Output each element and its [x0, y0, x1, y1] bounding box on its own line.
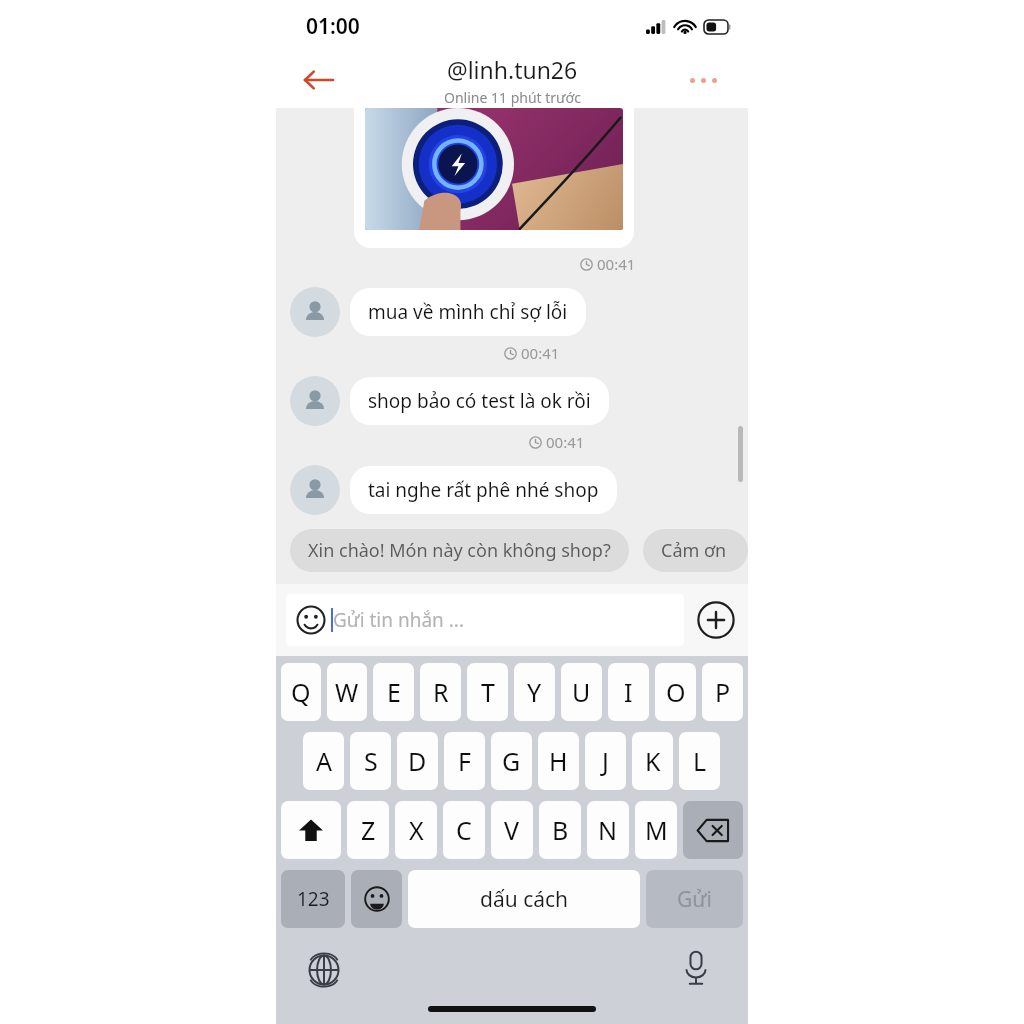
button[interactable]: Gửi	[646, 870, 743, 928]
button[interactable]: W	[327, 663, 367, 721]
staticText: C	[456, 813, 472, 847]
staticText: D	[408, 744, 427, 778]
button[interactable]: Backspace	[683, 801, 743, 859]
button[interactable]: C	[443, 801, 485, 859]
staticText: 00:41	[597, 254, 636, 274]
button[interactable]: F	[444, 732, 485, 790]
button[interactable]: 123	[281, 870, 345, 928]
staticText: U	[572, 675, 591, 709]
button[interactable]: X	[395, 801, 437, 859]
staticText: S	[364, 744, 378, 778]
staticText: F	[458, 744, 471, 778]
staticText: tai nghe rất phê nhé shop	[368, 477, 599, 503]
button[interactable]: U	[561, 663, 602, 721]
button[interactable]: dấu cách	[408, 870, 640, 928]
button[interactable]: O	[655, 663, 696, 721]
button[interactable]: I	[608, 663, 649, 721]
staticText: M	[645, 813, 668, 847]
staticText: X	[409, 813, 424, 847]
button[interactable]: J	[585, 732, 626, 790]
staticText: 00:41	[521, 343, 560, 363]
staticText: L	[693, 744, 707, 778]
button[interactable]: G	[491, 732, 532, 790]
staticText: 123	[297, 886, 330, 912]
button[interactable]: Y	[514, 663, 555, 721]
staticText: W	[335, 675, 359, 709]
staticText: H	[549, 744, 568, 778]
button[interactable]: N	[587, 801, 629, 859]
button[interactable]: Q	[281, 663, 321, 721]
button[interactable]: Cảm ơn bạn nhé	[643, 529, 748, 572]
staticText: shop bảo có test là ok rồi	[368, 388, 591, 414]
staticText: T	[481, 675, 495, 709]
staticText: Q	[291, 675, 311, 709]
staticText: E	[387, 675, 401, 709]
staticText: P	[715, 675, 731, 709]
staticText: Cảm ơn bạn nhé	[661, 538, 730, 563]
button[interactable]: tai nghe rất phê nhé shop	[350, 466, 617, 514]
staticText: J	[602, 744, 609, 778]
staticText: dấu cách	[480, 885, 569, 914]
button[interactable]: R	[420, 663, 461, 721]
button[interactable]: H	[538, 732, 579, 790]
button[interactable]: L	[679, 732, 720, 790]
button[interactable]: M	[635, 801, 677, 859]
staticText: R	[433, 675, 449, 709]
button[interactable]: Xin chào! Món này còn không shop?	[290, 529, 629, 572]
button[interactable]: Emoji	[351, 870, 402, 928]
button[interactable]: Change keyboard language	[300, 946, 348, 994]
button[interactable]: Add attachment	[694, 598, 738, 642]
button[interactable]: mua về mình chỉ sợ lỗi	[350, 288, 586, 336]
button[interactable]: Voice input	[672, 944, 720, 992]
staticText: Z	[361, 813, 376, 847]
staticText: N	[598, 813, 618, 847]
button[interactable]: T	[467, 663, 508, 721]
button[interactable]: E	[373, 663, 414, 721]
button[interactable]: S	[350, 732, 391, 790]
button[interactable]: shop bảo có test là ok rồi	[350, 377, 609, 425]
staticText: Y	[527, 675, 542, 709]
button[interactable]: Back	[296, 58, 340, 102]
button[interactable]: Gửi tin nhắn ...	[286, 594, 684, 646]
staticText: V	[504, 813, 520, 847]
staticText: A	[316, 744, 332, 778]
staticText: B	[552, 813, 569, 847]
staticText: Gửi	[677, 885, 712, 914]
staticText: 01:00	[306, 12, 360, 41]
staticText: 00:41	[546, 432, 585, 452]
button[interactable]: B	[539, 801, 581, 859]
button[interactable]: More options	[680, 63, 726, 97]
staticText: G	[502, 744, 521, 778]
staticText: Gửi tin nhắn ...	[333, 607, 465, 633]
button[interactable]: D	[397, 732, 438, 790]
button[interactable]: Z	[347, 801, 389, 859]
staticText: Xin chào! Món này còn không shop?	[308, 538, 611, 563]
button[interactable]: V	[491, 801, 533, 859]
button[interactable]	[354, 108, 634, 248]
button[interactable]: A	[303, 732, 344, 790]
staticText: O	[666, 675, 686, 709]
staticText: @linh.tun26	[447, 54, 578, 85]
button[interactable]: P	[702, 663, 743, 721]
button[interactable]: Shift	[281, 801, 341, 859]
staticText: mua về mình chỉ sợ lỗi	[368, 299, 568, 325]
staticText: K	[645, 744, 661, 778]
staticText: Online 11 phút trước	[444, 88, 581, 107]
staticText: I	[624, 675, 633, 709]
button[interactable]: K	[632, 732, 673, 790]
